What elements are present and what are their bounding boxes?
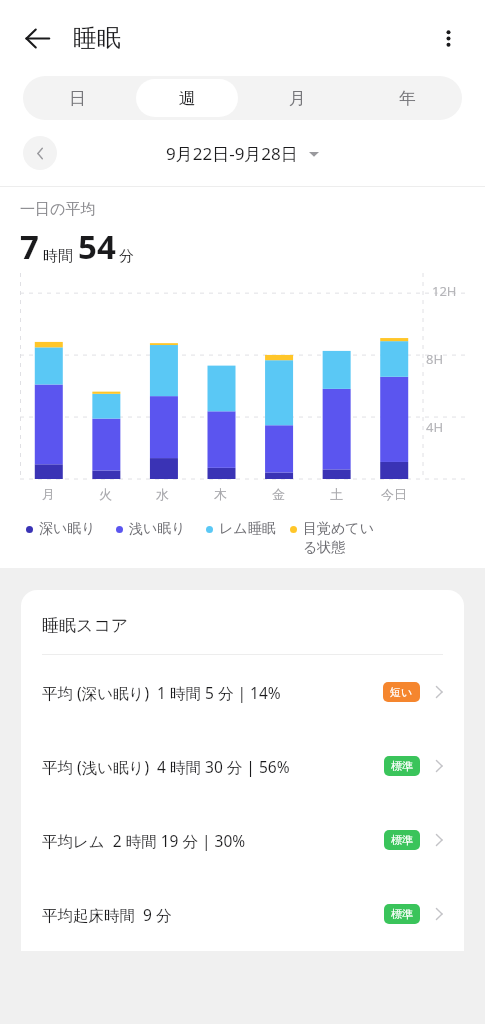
button[interactable]: 平均 (浅い眠り) 4 時間 30 分 | 56% [21,729,464,803]
button[interactable]: 平均 (深い眠り) 1 時間 5 分 | 14% [21,655,464,729]
button[interactable]: 平均レム 2 時間 19 分 | 30% [21,803,464,877]
button[interactable]: More options [424,14,472,62]
button[interactable]: 週 [136,79,238,117]
staticText: 木 [214,486,227,502]
staticText: 水 [156,486,169,502]
staticText: 平均 (深い眠り) 1 時間 5 分 | 14% [42,682,383,703]
staticText: 睡眠 [73,23,121,53]
staticText: 平均レム 2 時間 19 分 | 30% [42,830,384,851]
staticText: 金 [272,486,285,502]
staticText: 標準 [391,833,413,847]
staticText: 平均起床時間 9 分 [42,904,384,925]
staticText: 年 [399,88,416,109]
staticText: 短い [390,685,413,699]
staticText: 目覚めている状態 [303,520,382,556]
staticText: 平均 (浅い眠り) 4 時間 30 分 | 56% [42,756,384,777]
staticText: 標準 [391,907,413,921]
button[interactable]: 年 [352,76,462,120]
staticText: 月 [42,486,55,502]
staticText: 月 [289,88,306,109]
staticText: 深い眠り [39,520,96,538]
staticText: 8H [426,350,444,368]
button[interactable]: 日 [23,76,132,120]
staticText: 時間 [43,247,73,266]
staticText: レム睡眠 [219,520,276,538]
staticText: 週 [179,88,196,109]
staticText: 4H [426,418,444,436]
staticText: 睡眠スコア [42,615,129,636]
button[interactable]: Back [13,14,61,62]
staticText: 標準 [391,759,413,773]
staticText: 浅い眠り [129,520,186,538]
staticText: 9月22日-9月28日 [166,142,298,165]
staticText: 54 [78,224,116,269]
staticText: 日 [69,88,86,109]
button[interactable]: Previous week [23,136,57,170]
staticText: 土 [330,486,343,502]
button[interactable]: 平均起床時間 9 分 [21,877,464,951]
button[interactable]: 月 [242,76,352,120]
staticText: 火 [99,486,112,502]
staticText: 一日の平均 [20,200,96,219]
staticText: 7 [20,224,39,269]
button[interactable]: 9月22日-9月28日 [162,138,323,169]
staticText: 12H [432,282,457,300]
staticText: 分 [119,247,134,266]
staticText: 今日 [381,486,407,502]
